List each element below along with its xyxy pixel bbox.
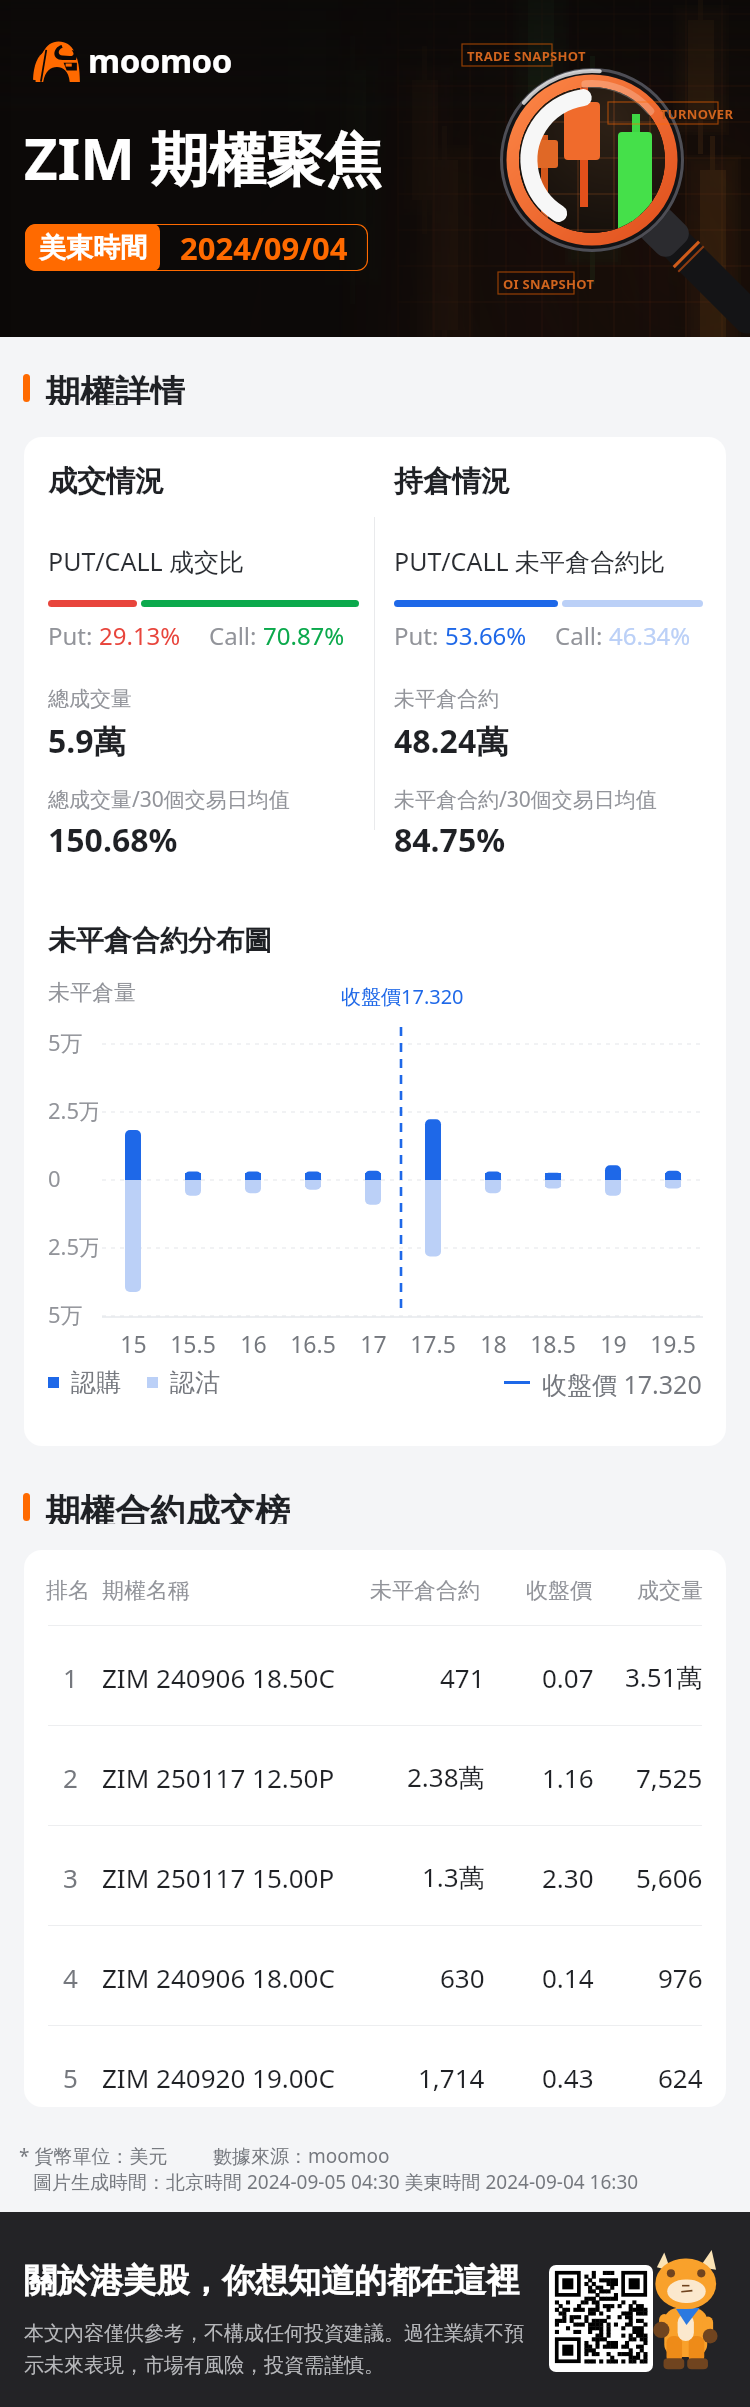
staticText: 2 (63, 1760, 78, 1795)
staticText: PUT/CALL 成交比 (48, 544, 245, 578)
staticText: 未平倉合約 (370, 1577, 480, 1605)
staticText: 471 (440, 1660, 485, 1695)
staticText: 1 (63, 1660, 78, 1695)
staticText: 18.5 (530, 1328, 576, 1359)
button[interactable] (24, 1925, 726, 2025)
staticText: 630 (440, 1960, 485, 1995)
staticText: 3.51萬 (625, 1659, 703, 1695)
staticText: 17 (360, 1328, 387, 1359)
staticText: 46.34% (609, 619, 691, 652)
staticText: Call: (209, 619, 263, 652)
staticText: 成交情況 (48, 463, 164, 500)
staticText: 期權合約成交榜 (45, 1490, 290, 1524)
staticText: 0.07 (542, 1660, 594, 1695)
staticText: 1.3萬 (422, 1859, 485, 1895)
staticText: 2.30 (542, 1860, 594, 1895)
staticText: 期權詳情 (45, 371, 185, 405)
staticText: 7,525 (636, 1760, 703, 1795)
staticText: ZIM 期權聚焦 (24, 118, 382, 197)
staticText: 84.75% (394, 818, 506, 862)
staticText: 本文內容僅供參考，不構成任何投資建議。過往業績不預示未來表現，市場有風險，投資需… (24, 2321, 524, 2378)
staticText: 2.38萬 (407, 1759, 485, 1795)
staticText: 0.43 (542, 2060, 594, 2095)
staticText: 成交量 (637, 1577, 703, 1605)
staticText: 關於港美股，你想知道的都在這裡 (24, 2260, 519, 2302)
staticText: 29.13% (99, 619, 181, 652)
staticText: 5.9萬 (48, 719, 126, 763)
staticText: 收盤價 17.320 (542, 1367, 702, 1397)
staticText: * 貨幣單位：美元 (19, 2143, 168, 2169)
staticText: 收盤價17.320 (341, 983, 464, 1010)
staticText: 1,714 (418, 2060, 485, 2095)
staticText: OI SNAPSHOT (503, 275, 595, 293)
staticText: 0 (48, 1163, 61, 1193)
staticText: 2.5万 (48, 1231, 98, 1261)
staticText: 1.16 (542, 1760, 594, 1795)
staticText: 圖片生成時間：北京時間 2024-09-05 04:30 美東時間 2024-0… (33, 2169, 639, 2195)
staticText: 數據來源：moomoo (213, 2143, 390, 2169)
staticText: 3 (63, 1860, 78, 1895)
staticText: 總成交量 (48, 686, 132, 712)
staticText: 4 (63, 1960, 78, 1995)
staticText: 150.68% (48, 818, 178, 862)
staticText: 16.5 (290, 1328, 336, 1359)
staticText: 48.24萬 (394, 719, 509, 763)
staticText: 排名 (46, 1577, 90, 1605)
other: moomoo mascot (648, 2250, 722, 2373)
button[interactable] (24, 2025, 726, 2107)
staticText: Call: (555, 619, 609, 652)
staticText: 2.5万 (48, 1095, 98, 1125)
staticText: 19.5 (650, 1328, 696, 1359)
staticText: 認沽 (170, 1367, 220, 1397)
staticText: 美東時間 (39, 231, 147, 265)
staticText: 18 (480, 1328, 507, 1359)
staticText: 總成交量/30個交易日均值 (48, 785, 290, 814)
button[interactable]: 美東時間 (25, 224, 368, 271)
staticText: moomoo (88, 38, 232, 83)
button[interactable] (24, 1625, 726, 1725)
staticText: 624 (658, 2060, 703, 2095)
staticText: 收盤價 (526, 1577, 592, 1605)
staticText: 5万 (48, 1299, 83, 1329)
button[interactable] (24, 1725, 726, 1825)
staticText: 976 (658, 1960, 703, 1995)
staticText: TRADE SNAPSHOT (467, 47, 586, 65)
staticText: 5 (63, 2060, 78, 2095)
staticText: 5万 (48, 1027, 83, 1057)
staticText: ZIM 250117 15.00P (102, 1860, 335, 1895)
staticText: TURNOVER (660, 105, 734, 123)
staticText: 5,606 (636, 1860, 703, 1895)
staticText: 未平倉合約分布圖 (48, 923, 272, 958)
staticText: Put: (394, 619, 445, 652)
staticText: ZIM 240906 18.00C (102, 1960, 335, 1995)
staticText: 期權名稱 (102, 1577, 190, 1605)
staticText: 未平倉合約 (394, 686, 499, 712)
staticText: 53.66% (445, 619, 527, 652)
staticText: ZIM 240906 18.50C (102, 1660, 335, 1695)
staticText: 未平倉合約/30個交易日均值 (394, 785, 657, 814)
staticText: 認購 (71, 1367, 121, 1397)
button[interactable] (24, 1825, 726, 1925)
staticText: ZIM 240920 19.00C (102, 2060, 335, 2095)
staticText: 19 (600, 1328, 627, 1359)
staticText: ZIM 250117 12.50P (102, 1760, 335, 1795)
staticText: 0.14 (542, 1960, 594, 1995)
staticText: 持倉情況 (394, 463, 510, 500)
staticText: 15 (120, 1328, 147, 1359)
staticText: 70.87% (263, 619, 345, 652)
staticText: 17.5 (410, 1328, 456, 1359)
staticText: PUT/CALL 未平倉合約比 (394, 544, 666, 578)
staticText: 未平倉量 (48, 979, 136, 1007)
staticText: 16 (240, 1328, 267, 1359)
staticText: Put: (48, 619, 99, 652)
staticText: 2024/09/04 (180, 227, 348, 269)
staticText: 15.5 (170, 1328, 216, 1359)
